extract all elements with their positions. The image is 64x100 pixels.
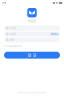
staticText: 登录即同意用户协议和隐私政策 [18, 91, 46, 93]
staticText: 欢迎登录 [28, 20, 36, 22]
button[interactable]: 获取验证 [50, 33, 58, 35]
staticText: 输入验证码 [6, 33, 16, 35]
button[interactable]: 已阅读并同意协议 [0, 45, 64, 47]
staticText: 9:41 [2, 2, 6, 4]
staticText: 登 录 [27, 52, 36, 58]
button[interactable]: 登 录 [4, 52, 60, 59]
staticText: 获取验证 [50, 33, 58, 35]
staticText: 已阅读并同意协议 [6, 45, 22, 47]
staticText: 输入密码 [6, 38, 14, 41]
staticText: 输入手机号 [6, 27, 16, 30]
